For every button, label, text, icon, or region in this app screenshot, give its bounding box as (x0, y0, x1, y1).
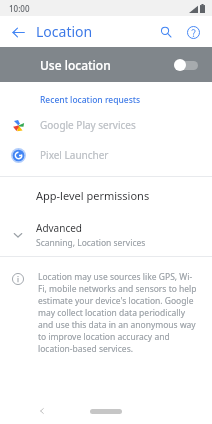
staticText: Location (36, 22, 93, 41)
button[interactable]: Advanced (0, 214, 212, 256)
button[interactable]: Pixel Launcher (0, 140, 212, 170)
button[interactable]: Help (180, 19, 206, 45)
button[interactable]: Back (6, 20, 30, 44)
button[interactable]: Google Play services (0, 110, 212, 140)
button[interactable]: Use location (0, 47, 212, 82)
button[interactable]: Back (32, 401, 52, 421)
staticText: Location may use sources like GPS, Wi-Fi… (38, 271, 200, 355)
button[interactable]: Home (90, 409, 122, 414)
staticText: 10:00 (9, 3, 30, 14)
staticText: Scanning, Location services (36, 237, 146, 249)
button[interactable]: Search (153, 19, 179, 45)
staticText: Recent location requests (40, 94, 141, 106)
staticText: App-level permissions (36, 188, 150, 203)
staticText: Use location (40, 57, 111, 73)
staticText: Google Play services (40, 118, 136, 132)
staticText: Advanced (36, 221, 82, 235)
staticText: Pixel Launcher (40, 148, 109, 162)
button[interactable]: App-level permissions (0, 177, 212, 214)
